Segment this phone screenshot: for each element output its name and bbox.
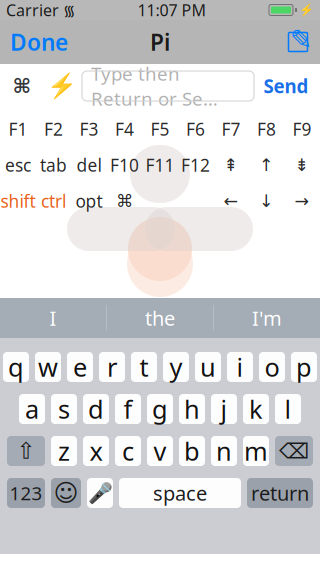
staticText: ⚡ [299,3,314,17]
staticText: ⌘ [116,191,133,211]
staticText: esc [5,153,31,176]
button[interactable]: x [83,436,109,466]
button[interactable]: I'm [214,298,320,338]
staticText: del [76,153,101,176]
staticText: ctrl [41,189,66,212]
staticText: x [89,434,102,468]
button[interactable]: F3 [71,114,107,144]
staticText: shift [0,189,35,212]
button[interactable]: d [83,394,109,424]
staticText: Carrier [6,0,59,21]
staticText: tab [40,153,67,176]
staticText: 🎤 [87,482,112,504]
button[interactable]: esc [0,150,36,180]
staticText: ↓ [259,191,274,211]
button[interactable]: b [179,436,205,466]
button[interactable]: r [99,352,125,382]
button[interactable]: p [291,352,317,382]
button[interactable]: n [211,436,237,466]
staticText: → [294,191,309,211]
button[interactable]: i [227,352,253,382]
button[interactable]: F11 [142,150,178,180]
button[interactable]: del [71,150,107,180]
button[interactable]: z [51,436,77,466]
button[interactable]: the [107,298,213,338]
staticText: F8 [257,117,276,140]
button[interactable]: Send [254,64,318,108]
button[interactable]: F5 [142,114,178,144]
button[interactable]: ↓ [249,186,284,216]
staticText: m [244,434,268,468]
staticText: d [88,392,104,426]
button[interactable]: a [19,394,45,424]
button[interactable]: k [243,394,269,424]
staticText: ↑ [259,155,274,175]
button[interactable]: Type then Return or Se… [82,71,254,101]
button[interactable]: ctrl [36,186,71,216]
staticText: Done [10,27,68,57]
button[interactable]: u [195,352,221,382]
button[interactable]: m [243,436,269,466]
staticText: I'm [252,305,282,331]
button[interactable]: space [119,478,241,508]
button[interactable]: F10 [107,150,142,180]
staticText: ✎ [290,24,312,55]
button[interactable]: Quick actions [42,64,82,108]
button[interactable]: 123 [7,478,45,508]
staticText: return [251,480,309,506]
button[interactable]: F9 [284,114,320,144]
button[interactable]: Done [0,20,78,64]
staticText: r [107,350,117,384]
button[interactable]: t [131,352,157,382]
staticText: z [58,434,70,468]
button[interactable]: e [67,352,93,382]
button[interactable] [178,186,213,216]
button[interactable]: I [0,298,106,338]
button[interactable]: F2 [36,114,71,144]
button[interactable]: F1 [0,114,36,144]
button[interactable]: F4 [107,114,142,144]
button[interactable]: Command [2,64,42,108]
button[interactable]: ⌘ [107,186,142,216]
button[interactable]: l [275,394,301,424]
button[interactable]: ← [213,186,249,216]
button[interactable]: ↑ [249,150,284,180]
button[interactable]: q [3,352,29,382]
button[interactable]: ⌫ [275,436,313,466]
button[interactable]: → [284,186,320,216]
staticText: n [216,434,232,468]
staticText: ☺ [53,479,78,507]
button[interactable]: opt [71,186,107,216]
staticText: k [249,392,263,426]
button[interactable]: g [147,394,173,424]
button[interactable] [142,186,178,216]
staticText: t [139,350,148,384]
button[interactable]: tab [36,150,71,180]
button[interactable]: ☺ [51,478,81,508]
button[interactable]: j [211,394,237,424]
button[interactable]: w [35,352,61,382]
button[interactable]: shift [0,186,36,216]
button[interactable]: o [259,352,285,382]
staticText: s [58,392,70,426]
button[interactable]: f [115,394,141,424]
button[interactable]: F8 [249,114,284,144]
button[interactable]: ⇟ [284,150,320,180]
staticText: F9 [292,117,311,140]
button[interactable]: F6 [178,114,213,144]
button[interactable]: Compose [276,20,320,64]
button[interactable]: ⇞ [213,150,249,180]
button[interactable]: y [163,352,189,382]
staticText: F6 [186,117,205,140]
staticText: F2 [44,117,63,140]
button[interactable]: F12 [178,150,213,180]
button[interactable]: F7 [213,114,249,144]
button[interactable]: return [247,478,313,508]
staticText: l [284,392,291,426]
button[interactable]: 🎤 [87,478,113,508]
button[interactable]: v [147,436,173,466]
button[interactable]: h [179,394,205,424]
button[interactable]: ⇧ [7,436,45,466]
button[interactable]: c [115,436,141,466]
button[interactable]: s [51,394,77,424]
